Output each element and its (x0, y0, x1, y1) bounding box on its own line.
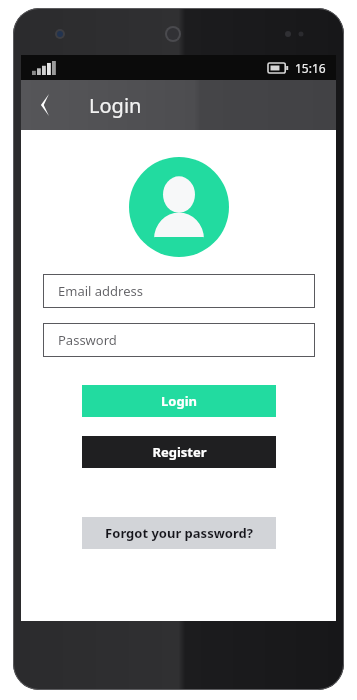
button[interactable]: Register (82, 436, 276, 468)
button[interactable]: Password (43, 323, 315, 357)
staticText: Login (89, 92, 142, 119)
staticText: Email address (58, 282, 143, 300)
button[interactable]: Login (82, 385, 276, 417)
staticText: 15:16 (295, 60, 326, 76)
staticText: Login (161, 392, 197, 410)
staticText: Password (58, 331, 117, 349)
button[interactable]: Forgot your password? (82, 517, 276, 549)
button[interactable]: Back (21, 83, 65, 127)
button[interactable]: Email address (43, 274, 315, 308)
staticText: Forgot your password? (105, 524, 253, 542)
staticText: Register (152, 443, 207, 461)
